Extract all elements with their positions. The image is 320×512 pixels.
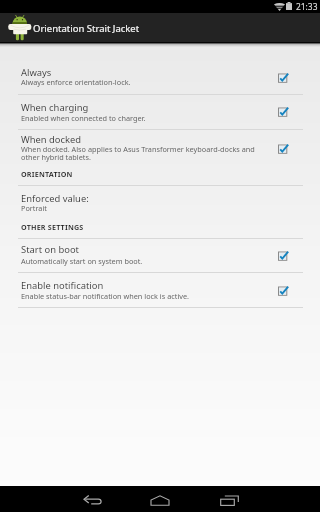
button[interactable]: [0, 185, 320, 217]
staticText: When charging: [21, 101, 89, 114]
staticText: Automatically start on system boot.: [21, 256, 143, 266]
button[interactable]: Recent apps: [209, 486, 249, 512]
staticText: Orientation Strait Jacket: [33, 22, 140, 35]
button[interactable]: [0, 273, 320, 307]
staticText: Enforced value:: [21, 192, 89, 205]
staticText: other hybrid tablets.: [21, 152, 91, 162]
button[interactable]: [0, 46, 320, 94]
button[interactable]: Toggle: [277, 285, 290, 297]
button[interactable]: [0, 95, 320, 129]
button[interactable]: Toggle: [277, 250, 290, 262]
button[interactable]: Back: [72, 486, 112, 512]
button[interactable]: [0, 238, 320, 272]
staticText: Start on boot: [21, 243, 79, 256]
staticText: Portrait: [21, 203, 47, 213]
staticText: OTHER SETTINGS: [21, 222, 84, 232]
button[interactable]: Home: [140, 486, 180, 512]
staticText: Enable status-bar notification when lock…: [21, 291, 190, 301]
staticText: When docked. Also applies to Asus Transf…: [21, 144, 255, 154]
button[interactable]: Toggle: [277, 143, 290, 155]
staticText: Always: [21, 66, 52, 79]
button[interactable]: Toggle: [277, 72, 290, 84]
staticText: Enabled when connected to charger.: [21, 113, 146, 123]
staticText: When docked: [21, 133, 82, 146]
staticText: 21:33: [296, 1, 318, 12]
staticText: ORIENTATION: [21, 169, 73, 179]
staticText: Always enforce orientation-lock.: [21, 77, 131, 87]
button[interactable]: [0, 130, 320, 168]
staticText: Enable notification: [21, 279, 104, 292]
button[interactable]: Toggle: [277, 106, 290, 118]
